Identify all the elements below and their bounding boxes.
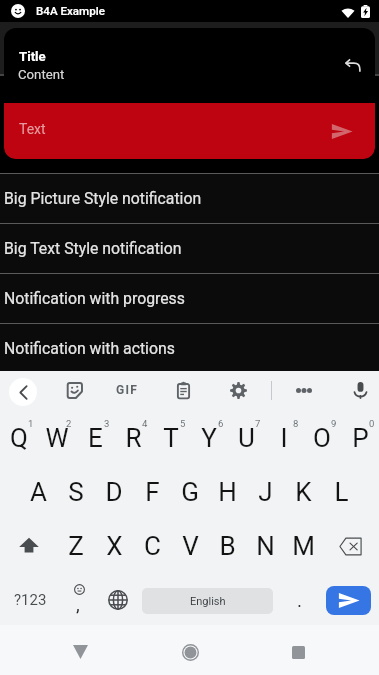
button[interactable]: ?123 [0,573,61,627]
button[interactable]: Settings [224,376,252,404]
button[interactable]: O [303,411,341,465]
button[interactable]: Z [57,519,95,573]
button[interactable]: Stickers [60,376,88,404]
button[interactable]: S [57,465,95,519]
button[interactable]: Title [4,28,375,103]
staticText: A [30,477,47,507]
staticText: E [88,423,103,453]
button[interactable]: English [142,588,273,614]
staticText: X [106,531,123,561]
button[interactable]: Change language [99,573,137,627]
staticText: U [238,423,255,453]
staticText: Big Text Style notification [4,239,182,258]
button[interactable]: Reply [335,45,371,85]
button[interactable]: . [281,573,319,627]
staticText: 0 [369,418,375,429]
button[interactable]: Shift [0,519,57,573]
button[interactable]: Emoji [61,573,99,627]
button[interactable]: L [322,465,360,519]
button[interactable]: W [38,411,76,465]
button[interactable]: More options [290,377,318,403]
staticText: 8 [293,418,299,429]
button[interactable]: B [208,519,246,573]
button[interactable]: G [171,465,209,519]
staticText: K [295,477,312,507]
button[interactable]: J [246,465,284,519]
staticText: Z [68,531,84,561]
button[interactable]: Big Picture Style notification [0,174,379,223]
staticText: Content [18,67,65,82]
button[interactable]: V [171,519,209,573]
button[interactable]: F [133,465,171,519]
button[interactable]: Backspace [322,519,379,573]
staticText: 6 [218,418,224,429]
staticText: 3 [104,418,110,429]
staticText: O [313,423,331,453]
button[interactable]: Text [4,103,375,159]
staticText: F [145,477,160,507]
staticText: N [256,531,275,561]
staticText: V [182,531,199,561]
staticText: L [334,477,349,507]
button[interactable]: H [208,465,246,519]
staticText: R [125,423,142,453]
button[interactable]: D [95,465,133,519]
button[interactable]: Notification with progress [0,274,379,323]
staticText: 7 [255,418,261,429]
staticText: G [181,477,199,507]
staticText: H [218,477,237,507]
button[interactable]: K [284,465,322,519]
staticText: P [352,423,369,453]
button[interactable]: Close keyboard [9,378,37,406]
staticText: I [280,423,288,453]
button[interactable]: E [76,411,114,465]
staticText: 9 [331,418,337,429]
button[interactable]: M [284,519,322,573]
staticText: M [292,531,315,561]
staticText: 1 [28,418,34,429]
staticText: Text [19,121,46,137]
staticText: GIF [116,383,139,397]
staticText: 2 [66,418,72,429]
button[interactable]: Send [326,586,371,615]
button[interactable]: Clipboard [169,376,197,404]
staticText: English [190,595,226,608]
staticText: W [45,423,69,453]
staticText: Title [19,49,46,64]
staticText: Y [201,423,217,453]
button[interactable]: P [341,411,379,465]
button[interactable]: Q [0,411,38,465]
staticText: D [105,477,123,507]
button[interactable]: Y [190,411,228,465]
button[interactable]: X [95,519,133,573]
button[interactable]: R [114,411,152,465]
staticText: Notification with actions [4,339,175,358]
button[interactable]: A [19,465,57,519]
button[interactable]: I [265,411,303,465]
staticText: Notification with progress [4,289,185,308]
button[interactable]: Big Text Style notification [0,224,379,273]
staticText: ?123 [14,591,47,609]
staticText: C [144,531,161,561]
staticText: S [68,477,84,507]
button[interactable]: N [246,519,284,573]
button[interactable]: C [133,519,171,573]
button[interactable]: GIF [112,377,143,403]
staticText: Big Picture Style notification [4,189,202,208]
staticText: J [258,477,273,507]
button[interactable]: Voice input [346,376,374,404]
button[interactable]: T [152,411,190,465]
staticText: 5 [180,418,186,429]
staticText: Q [10,423,28,453]
button[interactable]: Home [165,627,215,675]
staticText: B [219,531,236,561]
staticText: B4A Example [36,4,105,18]
staticText: T [163,423,179,453]
staticText: 4 [142,418,148,429]
button[interactable]: U [227,411,265,465]
button[interactable]: Notification with actions [0,324,379,373]
button[interactable]: Back [55,627,105,675]
button[interactable]: Recent apps [273,627,323,675]
staticText: . [297,589,303,611]
staticText: , [76,593,80,615]
